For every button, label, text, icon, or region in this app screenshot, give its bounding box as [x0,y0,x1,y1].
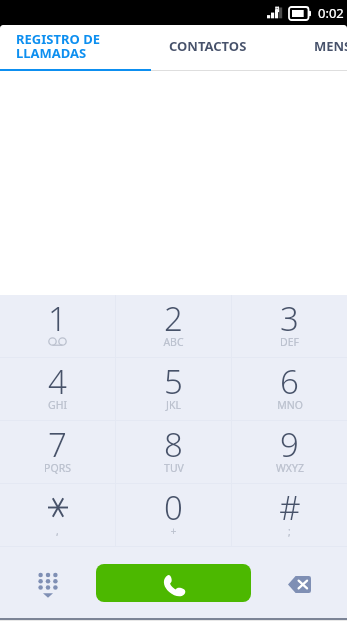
staticText: TUV [164,461,184,475]
staticText: 9 [280,422,299,467]
staticText: , [56,524,59,538]
button[interactable]: 3 [232,295,347,358]
staticText: ABC [163,335,184,349]
button[interactable]: Delete [251,547,347,618]
staticText: + [170,524,177,538]
button[interactable]: # [232,484,347,547]
button[interactable]: 5 [116,358,231,421]
staticText: 4 [48,359,67,404]
button[interactable]: 4 [0,358,115,421]
staticText: PQRS [44,461,71,475]
button[interactable]: REGISTRO DE LLAMADAS [0,28,152,71]
button[interactable]: , [0,484,115,547]
staticText: REGISTRO DE LLAMADAS [16,30,100,62]
button[interactable]: CONTACTOS [152,28,267,71]
staticText: CONTACTOS [169,37,247,55]
button[interactable]: 9 [232,421,347,484]
button[interactable]: 7 [0,421,115,484]
staticText: WXYZ [276,461,304,475]
button[interactable]: Call [96,564,251,602]
staticText: MENSAJES [314,37,347,55]
staticText: 3 [280,296,299,341]
staticText: 0:02 [318,4,344,22]
staticText: 1 [48,296,67,341]
button[interactable]: 1 [0,295,115,358]
staticText: 0 [164,485,183,530]
button[interactable]: MENSAJES [267,28,347,71]
button[interactable]: 8 [116,421,231,484]
staticText: 2 [164,296,183,341]
staticText: # [279,485,301,530]
staticText: 7 [48,422,67,467]
staticText: ; [288,524,291,538]
staticText: MNO [277,398,303,412]
button[interactable]: 6 [232,358,347,421]
button[interactable]: 0 [116,484,231,547]
staticText: 6 [280,359,299,404]
button[interactable]: 2 [116,295,231,358]
staticText: 5 [164,359,183,404]
staticText: JKL [166,398,181,412]
button[interactable]: Hide dialpad [0,547,96,618]
staticText: DEF [280,335,299,349]
staticText: 8 [164,422,183,467]
staticText: GHI [48,398,67,412]
